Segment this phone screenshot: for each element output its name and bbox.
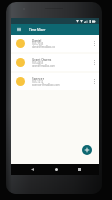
- staticText: spencer@mailbox.com: [32, 83, 60, 86]
- staticText: Daniel: [32, 39, 42, 42]
- staticText: Grant Owens: [32, 58, 52, 61]
- button[interactable]: Home: [51, 164, 61, 175]
- staticText: 555-1212: [32, 80, 44, 83]
- button[interactable]: Recent apps: [74, 164, 84, 175]
- button[interactable]: Spencer: [11, 73, 99, 90]
- staticText: daniel@mailbox.co: [32, 45, 55, 48]
- button[interactable]: Add: [82, 145, 92, 155]
- staticText: Spencer: [32, 77, 44, 80]
- staticText: 555-7035: [32, 42, 44, 45]
- button[interactable]: Back: [27, 164, 37, 175]
- button[interactable]: Open navigation menu: [14, 24, 23, 35]
- staticText: grant@mailbx.com: [32, 64, 56, 67]
- staticText: 555-4455: [32, 61, 44, 64]
- staticText: Time Miser: [29, 28, 46, 32]
- button[interactable]: More options: [89, 35, 99, 52]
- button[interactable]: Grant Owens: [11, 54, 99, 71]
- button[interactable]: More options: [89, 54, 99, 71]
- button[interactable]: Daniel: [11, 35, 99, 52]
- button[interactable]: More options: [89, 73, 99, 90]
